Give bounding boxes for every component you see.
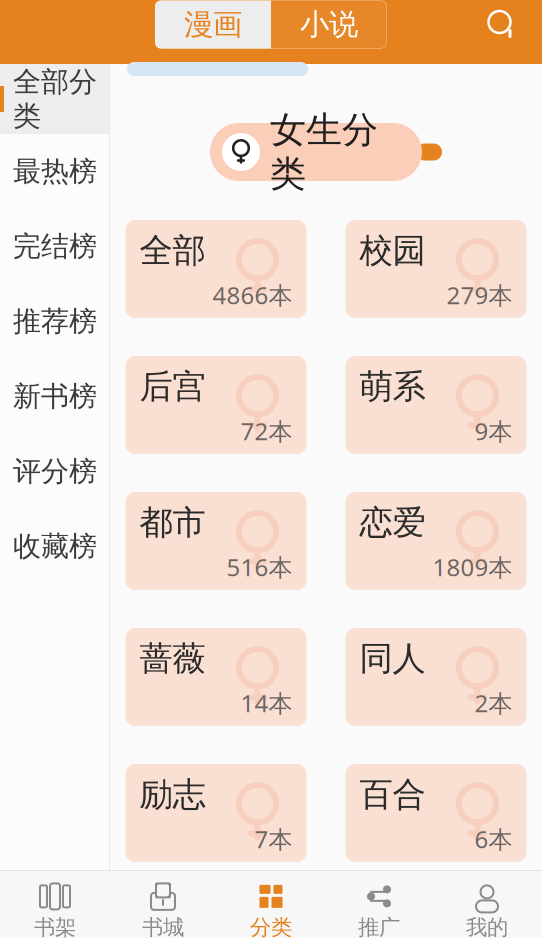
staticText: 完结榜 bbox=[13, 229, 97, 264]
staticText: 推荐榜 bbox=[13, 304, 97, 339]
button[interactable]: 推荐榜 bbox=[0, 284, 110, 359]
staticText: 评分榜 bbox=[13, 454, 97, 489]
staticText: 恋爱 bbox=[359, 502, 425, 543]
button[interactable]: 蔷薇 bbox=[125, 628, 306, 726]
staticText: 女生分类 bbox=[270, 108, 378, 196]
staticText: 推广 bbox=[358, 914, 400, 938]
staticText: 9本 bbox=[474, 415, 512, 447]
button[interactable]: 校园 bbox=[345, 220, 526, 318]
staticText: 516本 bbox=[226, 551, 292, 583]
staticText: 书城 bbox=[142, 914, 184, 938]
button[interactable]: 我的 bbox=[433, 876, 541, 938]
staticText: 书架 bbox=[34, 914, 76, 938]
staticText: 1809本 bbox=[432, 551, 512, 583]
staticText: 分类 bbox=[250, 914, 292, 938]
staticText: 6本 bbox=[474, 823, 512, 855]
staticText: 校园 bbox=[359, 230, 425, 271]
button[interactable]: 小说 bbox=[271, 0, 387, 48]
staticText: 279本 bbox=[446, 279, 512, 311]
staticText: 7本 bbox=[254, 823, 292, 855]
staticText: 百合 bbox=[359, 774, 425, 815]
staticText: 萌系 bbox=[359, 366, 425, 407]
staticText: 小说 bbox=[300, 6, 358, 42]
button[interactable]: 推广 bbox=[325, 876, 433, 938]
button[interactable]: 收藏榜 bbox=[0, 509, 110, 584]
button[interactable]: 完结榜 bbox=[0, 209, 110, 284]
staticText: 72本 bbox=[240, 415, 292, 447]
staticText: 4866本 bbox=[212, 279, 292, 311]
button[interactable]: 恋爱 bbox=[345, 492, 526, 590]
staticText: 2本 bbox=[474, 687, 512, 719]
staticText: 最热榜 bbox=[13, 154, 97, 189]
button[interactable]: 萌系 bbox=[345, 356, 526, 454]
button[interactable]: 后宫 bbox=[125, 356, 306, 454]
staticText: 励志 bbox=[139, 774, 205, 815]
button[interactable]: 励志 bbox=[125, 764, 306, 862]
button[interactable]: 评分榜 bbox=[0, 434, 110, 509]
staticText: 漫画 bbox=[184, 6, 242, 42]
staticText: 蔷薇 bbox=[139, 638, 205, 679]
staticText: 14本 bbox=[240, 687, 292, 719]
staticText: 全部 bbox=[139, 230, 205, 271]
button[interactable]: 最热榜 bbox=[0, 134, 110, 209]
button[interactable]: 新书榜 bbox=[0, 359, 110, 434]
staticText: 全部分类 bbox=[13, 65, 97, 133]
button[interactable]: 书架 bbox=[1, 876, 109, 938]
button[interactable]: 漫画 bbox=[155, 0, 271, 48]
button[interactable]: 百合 bbox=[345, 764, 526, 862]
button[interactable]: 都市 bbox=[125, 492, 306, 590]
staticText: 我的 bbox=[466, 914, 508, 938]
button[interactable]: 全部 bbox=[125, 220, 306, 318]
staticText: 同人 bbox=[359, 638, 425, 679]
staticText: 新书榜 bbox=[13, 379, 97, 414]
button[interactable]: 全部分类 bbox=[0, 64, 110, 134]
staticText: 后宫 bbox=[139, 366, 205, 407]
button[interactable]: 书城 bbox=[109, 876, 217, 938]
staticText: 收藏榜 bbox=[13, 529, 97, 564]
staticText: 都市 bbox=[139, 502, 205, 543]
button[interactable]: 同人 bbox=[345, 628, 526, 726]
button[interactable]: 分类 bbox=[217, 876, 325, 938]
button[interactable]: 搜索 bbox=[474, 0, 530, 52]
